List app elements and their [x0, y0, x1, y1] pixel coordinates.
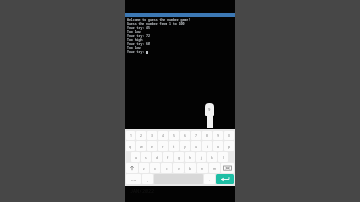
button[interactable]: 8 [202, 131, 212, 140]
button[interactable]: u [191, 141, 201, 151]
staticText: ?123 [131, 178, 137, 181]
staticText: 7 [195, 133, 197, 138]
staticText: e [151, 144, 153, 149]
button[interactable]: q [126, 141, 135, 151]
staticText: r [162, 144, 164, 149]
staticText: b [189, 166, 192, 171]
button[interactable]: l [218, 152, 228, 162]
staticText: u [195, 144, 198, 149]
button[interactable]: i [202, 141, 212, 151]
staticText: JAN/2022 [130, 188, 155, 195]
staticText: w [140, 144, 143, 149]
button[interactable]: p [224, 141, 234, 151]
staticText: 1 [130, 133, 132, 138]
staticText: s [145, 155, 147, 160]
button[interactable]: t [169, 141, 179, 151]
button[interactable]: x [150, 163, 160, 173]
staticText: 9 [208, 107, 211, 113]
button[interactable]: 9 [213, 131, 223, 140]
button[interactable]: 5 [169, 131, 179, 140]
button[interactable]: v [173, 163, 184, 173]
staticText: Your try: [127, 50, 145, 54]
button[interactable]: Backspace [221, 163, 234, 173]
staticText: g [178, 155, 181, 160]
staticText: o [217, 144, 220, 149]
button[interactable]: s [141, 152, 151, 162]
button[interactable]: 3 [147, 131, 157, 140]
button[interactable]: f [163, 152, 173, 162]
button[interactable]: r [158, 141, 168, 151]
staticText: q [129, 144, 132, 149]
button[interactable]: h [185, 152, 195, 162]
staticText: Guess the number from 1 to 100 [127, 22, 185, 26]
staticText: Your try: 60 [127, 42, 150, 46]
staticText: i [207, 144, 208, 149]
button[interactable]: a [131, 152, 140, 162]
staticText: y [184, 144, 186, 149]
button[interactable]: Shift [126, 163, 138, 173]
staticText: h [189, 155, 192, 160]
button[interactable]: m [209, 163, 220, 173]
staticText: , [147, 177, 148, 182]
button[interactable]: j [196, 152, 206, 162]
staticText: Your try: 72 [127, 34, 150, 38]
staticText: j [201, 155, 202, 160]
staticText: l [223, 155, 224, 160]
staticText: . [209, 177, 210, 182]
staticText: 8 [206, 133, 208, 138]
staticText: n [201, 166, 204, 171]
staticText: Too low [127, 30, 141, 34]
button[interactable]: Enter [216, 174, 234, 184]
button[interactable]: c [161, 163, 172, 173]
button[interactable]: ?123 [126, 174, 141, 184]
button[interactable]: , [142, 174, 153, 184]
staticText: t [173, 144, 175, 149]
button[interactable]: o [213, 141, 223, 151]
staticText: 5 [173, 133, 175, 138]
button[interactable]: 6 [180, 131, 190, 140]
staticText: z [143, 166, 145, 171]
button[interactable]: k [207, 152, 217, 162]
button[interactable]: w [136, 141, 146, 151]
staticText: 9 [217, 133, 219, 138]
staticText: x [154, 166, 156, 171]
staticText: 3 [151, 133, 153, 138]
button[interactable]: e [147, 141, 157, 151]
staticText: p [228, 144, 231, 149]
staticText: a [135, 155, 137, 160]
button[interactable]: y [180, 141, 190, 151]
button[interactable]: g [174, 152, 184, 162]
staticText: m [213, 166, 217, 171]
button[interactable]: 1 [126, 131, 135, 140]
staticText: Welcome to guess the number game! [127, 18, 191, 22]
staticText: Your try: 45 [127, 26, 150, 30]
staticText: 4 [162, 133, 164, 138]
staticText: Too high [127, 38, 143, 42]
button[interactable]: 4 [158, 131, 168, 140]
button[interactable]: 2 [136, 131, 146, 140]
button[interactable]: b [185, 163, 196, 173]
button[interactable]: 0 [224, 131, 234, 140]
staticText: 6 [184, 133, 186, 138]
button[interactable]: n [197, 163, 208, 173]
staticText: 2 [140, 133, 142, 138]
button[interactable]: 7 [191, 131, 201, 140]
staticText: v [178, 166, 180, 171]
staticText: k [211, 155, 213, 160]
staticText: Too low [127, 46, 141, 50]
staticText: d [156, 155, 159, 160]
button[interactable]: z [139, 163, 149, 173]
staticText: c [166, 166, 168, 171]
staticText: 0 [228, 133, 230, 138]
button[interactable]: d [152, 152, 162, 162]
staticText: f [167, 155, 169, 160]
